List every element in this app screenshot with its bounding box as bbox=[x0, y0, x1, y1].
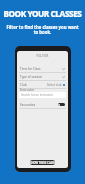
button[interactable]: Favourites bbox=[17, 101, 68, 108]
staticText: Type of session bbox=[20, 75, 43, 79]
button[interactable]: Club bbox=[17, 81, 68, 88]
staticText: Search for an instructor bbox=[21, 93, 54, 97]
staticText: FILTER bbox=[17, 54, 68, 58]
staticText: Instructor bbox=[20, 88, 35, 92]
staticText: Club bbox=[20, 83, 27, 87]
button[interactable]: Time for Class bbox=[17, 65, 68, 72]
button[interactable]: SHOW THESE CLASSES bbox=[30, 160, 55, 165]
staticText: Time for Class bbox=[20, 67, 41, 71]
staticText: Favourites bbox=[20, 103, 36, 107]
staticText: Select club bbox=[47, 83, 62, 87]
button[interactable]: Favourites toggle bbox=[58, 103, 65, 106]
staticText: SHOW THESE CLASSES bbox=[30, 161, 55, 165]
staticText: BOOK YOUR CLASSES bbox=[0, 8, 85, 19]
button[interactable]: Search for an instructor bbox=[19, 92, 66, 98]
staticText: Filter to find the classes you want to b… bbox=[0, 24, 85, 36]
button[interactable]: Type of session bbox=[17, 73, 68, 80]
